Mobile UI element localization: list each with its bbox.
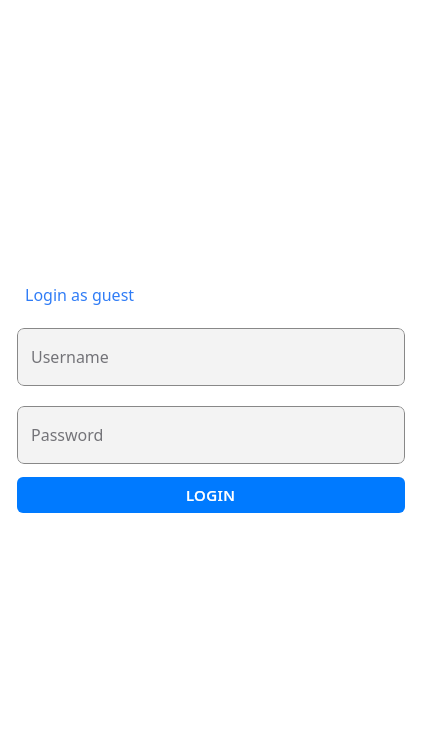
button[interactable]: Login as guest bbox=[25, 284, 135, 306]
staticText: LOGIN bbox=[186, 485, 236, 505]
staticText: Password bbox=[31, 424, 104, 446]
staticText: Username bbox=[31, 346, 109, 368]
button[interactable]: LOGIN bbox=[17, 477, 405, 513]
button[interactable]: Username bbox=[17, 328, 405, 386]
button[interactable]: Password bbox=[17, 406, 405, 464]
